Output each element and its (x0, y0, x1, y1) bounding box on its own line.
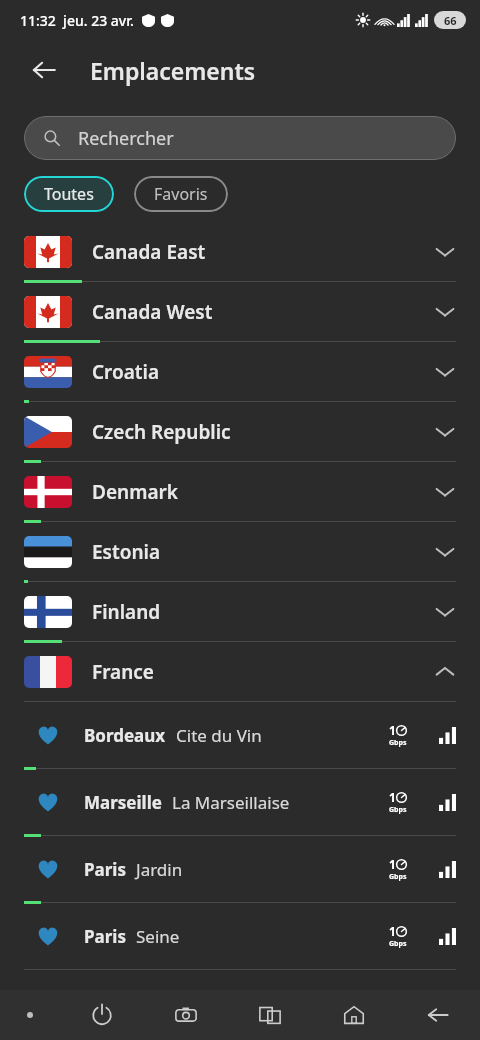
staticText: Estonia (92, 539, 161, 565)
staticText: Finland (92, 599, 161, 625)
staticText: 1 (389, 923, 396, 939)
staticText: Marseille (84, 791, 162, 814)
staticText: 1 (389, 722, 396, 738)
staticText: Gbps (389, 805, 407, 815)
button[interactable]: Canada West (0, 285, 480, 345)
staticText: Favoris (154, 183, 208, 205)
staticText: Gbps (389, 939, 407, 949)
staticText: Paris (84, 858, 126, 881)
button[interactable]: Toutes (24, 176, 114, 212)
staticText: La Marseillaise (172, 791, 290, 814)
staticText: Canada West (92, 299, 213, 325)
button[interactable]: Paris (0, 906, 480, 973)
staticText: 66 (444, 13, 457, 28)
staticText: Toutes (44, 183, 94, 205)
button[interactable]: Estonia (0, 525, 480, 585)
staticText: Jardin (136, 858, 183, 881)
button[interactable]: Recents (228, 990, 312, 1040)
staticText: Paris (84, 925, 126, 948)
button[interactable]: Finland (0, 585, 480, 645)
button[interactable]: Home (312, 990, 396, 1040)
button[interactable]: Canada East (0, 225, 480, 285)
button[interactable]: Screenshot (144, 990, 228, 1040)
button[interactable]: Paris (0, 839, 480, 906)
button[interactable]: Bordeaux (0, 705, 480, 772)
staticText: Denmark (92, 479, 178, 505)
staticText: Gbps (389, 872, 407, 882)
button[interactable]: Back (396, 990, 480, 1040)
staticText: 11:32 jeu. 23 avr. (20, 11, 134, 30)
staticText: Croatia (92, 359, 160, 385)
button[interactable]: France (0, 645, 480, 705)
button[interactable]: Favoris (134, 176, 228, 212)
staticText: Rechercher (78, 126, 174, 151)
staticText: Gbps (389, 738, 407, 748)
button[interactable]: Rechercher (24, 116, 456, 160)
staticText: Emplacements (90, 55, 256, 86)
button[interactable]: Marseille (0, 772, 480, 839)
staticText: 1 (389, 856, 396, 872)
button[interactable]: Power (60, 990, 144, 1040)
button[interactable]: Back (22, 48, 66, 92)
button[interactable]: Croatia (0, 345, 480, 405)
button[interactable]: Czech Republic (0, 405, 480, 465)
staticText: France (92, 659, 154, 685)
staticText: Bordeaux (84, 724, 166, 747)
staticText: Cite du Vin (176, 724, 262, 747)
button[interactable]: Denmark (0, 465, 480, 525)
staticText: 1 (389, 789, 396, 805)
staticText: Seine (136, 925, 180, 948)
staticText: Canada East (92, 239, 206, 265)
staticText: Czech Republic (92, 419, 231, 445)
